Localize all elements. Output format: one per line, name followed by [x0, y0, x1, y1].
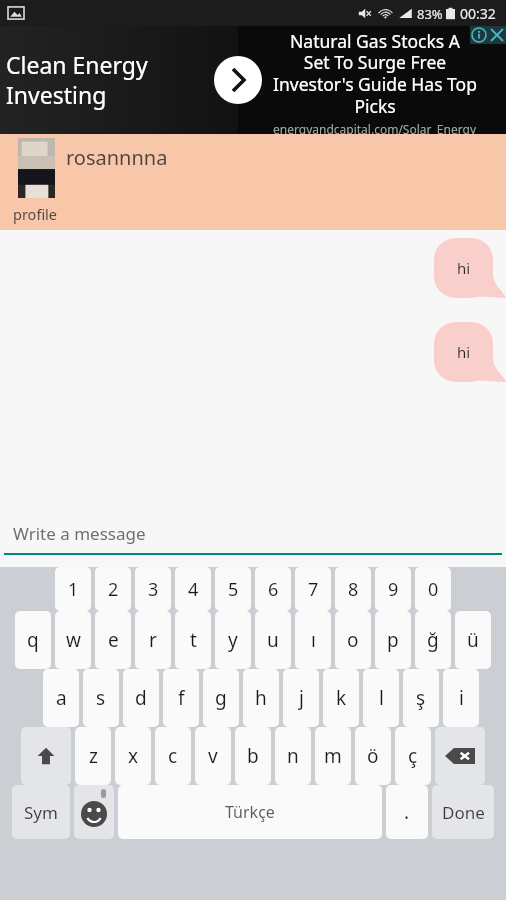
staticText: 6: [268, 577, 279, 602]
staticText: Clean Energy Investing: [6, 49, 148, 111]
button[interactable]: m: [315, 727, 351, 785]
button[interactable]: l: [363, 669, 399, 727]
button[interactable]: 5: [215, 567, 251, 611]
staticText: d: [135, 685, 147, 711]
button[interactable]: 1: [55, 567, 91, 611]
staticText: Türkçe: [225, 801, 275, 823]
staticText: 5: [228, 577, 239, 602]
button[interactable]: 3: [135, 567, 171, 611]
button[interactable]: Clean Energy Investing: [0, 26, 506, 134]
button[interactable]: ç: [395, 727, 431, 785]
button[interactable]: 4: [175, 567, 211, 611]
button[interactable]: ş: [403, 669, 439, 727]
staticText: hi: [457, 258, 471, 278]
button[interactable]: i: [443, 669, 479, 727]
staticText: ş: [416, 685, 426, 711]
button[interactable]: Türkçe: [118, 785, 382, 839]
button[interactable]: t: [175, 611, 211, 669]
staticText: 8: [348, 577, 359, 602]
staticText: Done: [442, 801, 485, 824]
button[interactable]: g: [203, 669, 239, 727]
button[interactable]: Emoji: [74, 785, 114, 839]
staticText: k: [336, 685, 347, 711]
button[interactable]: c: [155, 727, 191, 785]
staticText: .: [404, 799, 410, 825]
button[interactable]: y: [215, 611, 251, 669]
staticText: 0: [428, 577, 439, 602]
staticText: x: [128, 743, 139, 769]
button[interactable]: Ad info: [470, 26, 488, 44]
button[interactable]: Next: [214, 56, 262, 104]
staticText: 3: [148, 577, 159, 602]
button[interactable]: hi: [434, 238, 506, 298]
button[interactable]: 2: [95, 567, 131, 611]
button[interactable]: 7: [295, 567, 331, 611]
button[interactable]: Close ad: [488, 26, 506, 44]
button[interactable]: u: [255, 611, 291, 669]
staticText: t: [190, 627, 197, 653]
staticText: ı: [311, 627, 316, 653]
button[interactable]: ü: [455, 611, 491, 669]
button[interactable]: rosannnna: [0, 134, 506, 230]
button[interactable]: .: [386, 785, 428, 839]
staticText: r: [149, 627, 157, 653]
staticText: 9: [388, 577, 399, 602]
staticText: u: [267, 627, 279, 653]
button[interactable]: e: [95, 611, 131, 669]
button[interactable]: j: [283, 669, 319, 727]
staticText: 2: [108, 577, 119, 602]
button[interactable]: o: [335, 611, 371, 669]
button[interactable]: w: [55, 611, 91, 669]
staticText: 4: [188, 577, 199, 602]
button[interactable]: d: [123, 669, 159, 727]
button[interactable]: 9: [375, 567, 411, 611]
staticText: 00:32: [460, 4, 496, 23]
button[interactable]: Write a message: [0, 502, 506, 567]
button[interactable]: r: [135, 611, 171, 669]
staticText: ü: [467, 627, 479, 653]
staticText: e: [108, 627, 119, 653]
button[interactable]: v: [195, 727, 231, 785]
staticText: h: [255, 685, 267, 711]
button[interactable]: Shift: [21, 727, 71, 785]
button[interactable]: s: [83, 669, 119, 727]
staticText: m: [324, 743, 342, 769]
button[interactable]: h: [243, 669, 279, 727]
button[interactable]: k: [323, 669, 359, 727]
staticText: s: [96, 685, 106, 711]
staticText: ç: [408, 743, 418, 769]
button[interactable]: 0: [415, 567, 451, 611]
button[interactable]: ı: [295, 611, 331, 669]
staticText: rosannnna: [66, 144, 168, 171]
button[interactable]: Done: [432, 785, 494, 839]
button[interactable]: n: [275, 727, 311, 785]
staticText: Write a message: [13, 522, 146, 545]
button[interactable]: ğ: [415, 611, 451, 669]
staticText: w: [66, 627, 81, 653]
staticText: v: [208, 743, 218, 769]
button[interactable]: Backspace: [435, 727, 485, 785]
staticText: l: [379, 685, 384, 711]
button[interactable]: 8: [335, 567, 371, 611]
staticText: a: [56, 685, 67, 711]
button[interactable]: Sym: [12, 785, 70, 839]
button[interactable]: p: [375, 611, 411, 669]
button[interactable]: f: [163, 669, 199, 727]
staticText: 83%: [417, 5, 443, 23]
button[interactable]: x: [115, 727, 151, 785]
staticText: p: [387, 627, 399, 653]
staticText: Natural Gas Stocks A Set To Surge Free I…: [273, 29, 477, 118]
button[interactable]: ö: [355, 727, 391, 785]
button[interactable]: a: [43, 669, 79, 727]
staticText: c: [168, 743, 178, 769]
button[interactable]: z: [75, 727, 111, 785]
staticText: energyandcapital.com/Solar_Energy: [273, 121, 477, 134]
staticText: hi: [457, 342, 471, 362]
button[interactable]: q: [15, 611, 51, 669]
staticText: o: [347, 627, 359, 653]
staticText: ğ: [427, 627, 439, 653]
button[interactable]: b: [235, 727, 271, 785]
button[interactable]: 6: [255, 567, 291, 611]
staticText: Sym: [24, 801, 58, 824]
button[interactable]: hi: [434, 322, 506, 382]
